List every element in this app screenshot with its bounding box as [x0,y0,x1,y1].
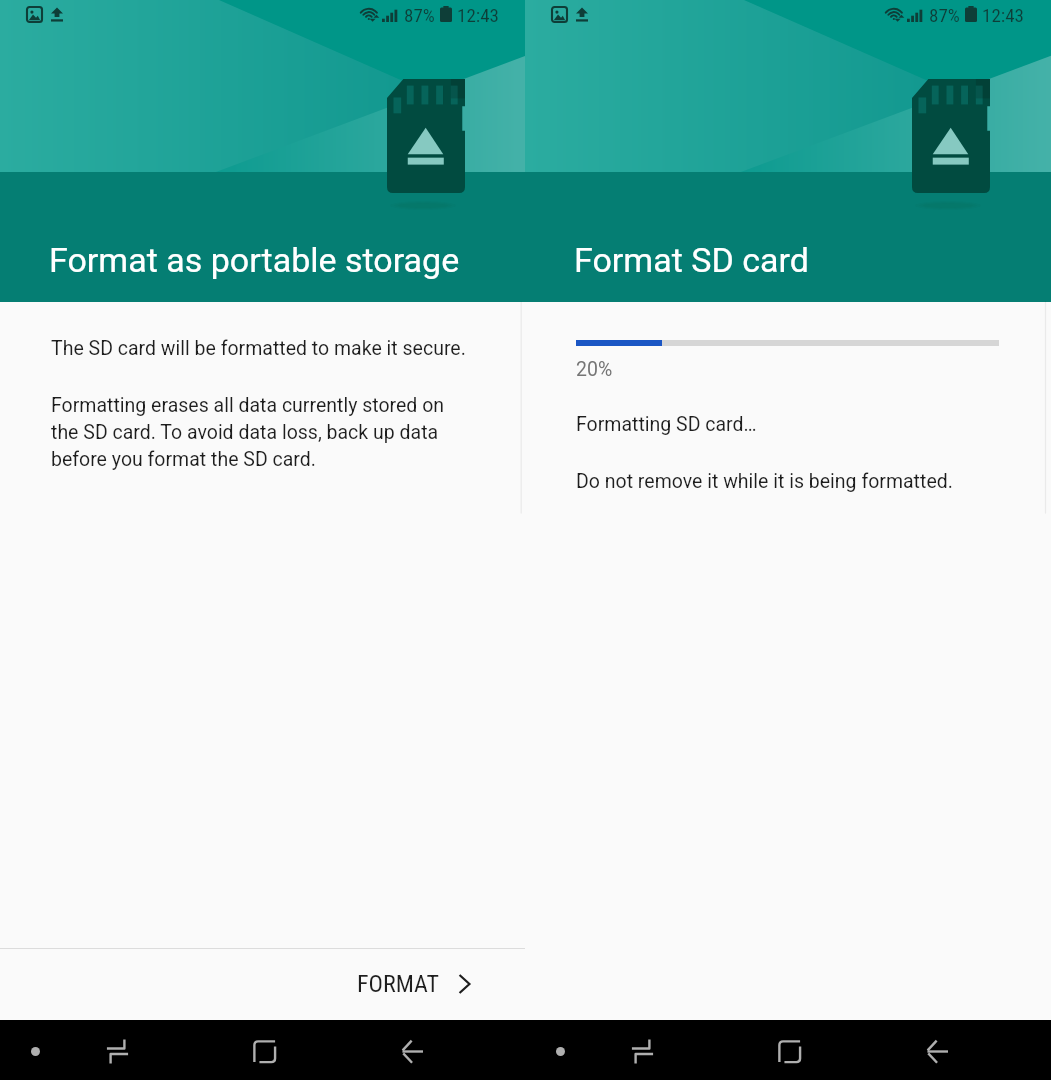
staticText: The SD card will be formatted to make it… [51,337,466,360]
button[interactable]: Recent apps [89,1023,145,1079]
staticText: Formatting erases all data currently sto… [51,394,445,417]
button[interactable]: Back [909,1023,965,1079]
button[interactable]: Home [236,1023,292,1079]
staticText: 20% [576,358,613,381]
button[interactable]: FORMAT [0,949,525,1020]
staticText: Formatting SD card… [576,413,757,436]
staticText: Format SD card [574,240,809,280]
staticText: before you format the SD card. [51,448,316,471]
button[interactable]: Recent apps [614,1023,670,1079]
staticText: Format as portable storage [49,240,460,280]
staticText: Do not remove it while it is being forma… [576,470,953,493]
staticText: 12:43 [982,4,1024,26]
staticText: the SD card. To avoid data loss, back up… [51,421,439,444]
staticText: FORMAT [357,970,439,998]
staticText: 12:43 [457,4,499,26]
button[interactable]: Back [384,1023,440,1079]
staticText: 87% [929,4,960,26]
staticText: 87% [404,4,435,26]
button[interactable]: Home [761,1023,817,1079]
